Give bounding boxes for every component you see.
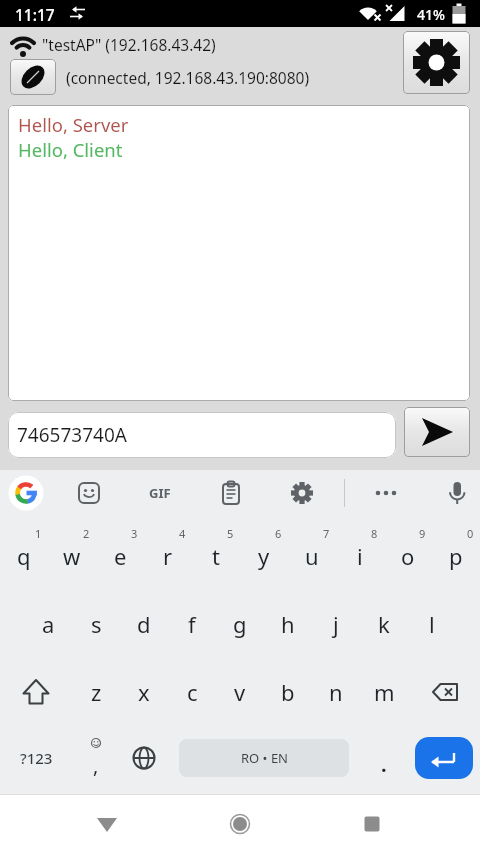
staticText: 746573740A (17, 422, 127, 448)
staticText: 11:17 (15, 4, 55, 25)
staticText: s (91, 609, 102, 639)
staticText: 8 (371, 526, 378, 541)
staticText: w (63, 541, 81, 571)
staticText: (connected, 192.168.43.190:8080) (66, 67, 310, 88)
button[interactable] (0, 658, 72, 726)
staticText: g (233, 609, 247, 639)
button[interactable] (213, 475, 249, 511)
staticText: a (42, 609, 55, 639)
button[interactable]: d (120, 590, 168, 658)
staticText: r (163, 541, 173, 571)
button[interactable] (403, 31, 470, 94)
staticText: 6 (275, 526, 282, 541)
button[interactable]: w (48, 522, 96, 590)
button[interactable]: r (144, 522, 192, 590)
button[interactable] (439, 475, 475, 511)
staticText: ?123 (20, 748, 53, 768)
button[interactable]: p (432, 522, 480, 590)
staticText: y (258, 541, 270, 571)
button[interactable]: RO • EN (168, 726, 360, 790)
staticText: x (138, 677, 150, 707)
button[interactable] (404, 407, 470, 457)
staticText: n (329, 677, 343, 707)
button[interactable]: g (216, 590, 264, 658)
staticText: d (137, 609, 151, 639)
staticText: z (91, 677, 102, 707)
button[interactable] (71, 475, 107, 511)
staticText: 4 (179, 526, 186, 541)
staticText: m (374, 677, 395, 707)
staticText: Hello, Server (18, 112, 129, 137)
staticText: b (281, 677, 295, 707)
button[interactable]: u (288, 522, 336, 590)
button[interactable]: v (216, 658, 264, 726)
button[interactable]: a (24, 590, 72, 658)
staticText: 9 (419, 526, 426, 541)
staticText: c (187, 677, 198, 707)
staticText: q (17, 541, 31, 571)
staticText: RO • EN (241, 749, 288, 767)
staticText: e (114, 541, 127, 571)
staticText: 1 (35, 526, 42, 541)
button[interactable]: o (384, 522, 432, 590)
staticText: 0 (467, 526, 474, 541)
staticText: l (429, 609, 435, 639)
staticText: "testAP" (192.168.43.42) (42, 34, 216, 55)
button[interactable]: z (72, 658, 120, 726)
staticText: 3 (131, 526, 138, 541)
button[interactable]: m (360, 658, 408, 726)
staticText: GIF (149, 484, 171, 502)
staticText: o (401, 541, 415, 571)
staticText: , (93, 752, 99, 778)
button[interactable] (10, 59, 56, 95)
staticText: v (234, 677, 246, 707)
button[interactable] (120, 726, 168, 790)
button[interactable]: s (72, 590, 120, 658)
button[interactable] (85, 802, 129, 846)
button[interactable]: b (264, 658, 312, 726)
button[interactable]: x (120, 658, 168, 726)
staticText: Hello, Client (18, 137, 123, 162)
button[interactable]: c (168, 658, 216, 726)
button[interactable]: k (360, 590, 408, 658)
button[interactable]: i (336, 522, 384, 590)
button[interactable] (284, 475, 320, 511)
button[interactable] (408, 658, 480, 726)
staticText: h (281, 609, 295, 639)
button[interactable]: j (312, 590, 360, 658)
staticText: 2 (83, 526, 90, 541)
staticText: k (378, 609, 390, 639)
button[interactable]: h (264, 590, 312, 658)
button[interactable]: f (168, 590, 216, 658)
button[interactable]: 746573740A (8, 412, 396, 458)
staticText: . (381, 751, 387, 777)
staticText: f (188, 609, 196, 639)
staticText: i (357, 541, 363, 571)
staticText: 41% (417, 5, 445, 24)
button[interactable]: ?123 (0, 726, 72, 790)
button[interactable] (408, 726, 480, 790)
staticText: p (449, 541, 463, 571)
button[interactable]: . (360, 726, 408, 790)
button[interactable]: n (312, 658, 360, 726)
staticText: j (333, 609, 339, 639)
button[interactable]: t (192, 522, 240, 590)
button[interactable] (4, 471, 48, 515)
staticText: 7 (323, 526, 330, 541)
staticText: t (212, 541, 220, 571)
button[interactable]: y (240, 522, 288, 590)
button[interactable]: , (72, 726, 120, 790)
button[interactable]: q (0, 522, 48, 590)
button[interactable] (350, 802, 394, 846)
staticText: u (305, 541, 319, 571)
staticText: 5 (227, 526, 234, 541)
button[interactable]: l (408, 590, 456, 658)
button[interactable]: GIF (142, 475, 178, 511)
button[interactable] (218, 802, 262, 846)
button[interactable]: e (96, 522, 144, 590)
button[interactable] (368, 475, 404, 511)
